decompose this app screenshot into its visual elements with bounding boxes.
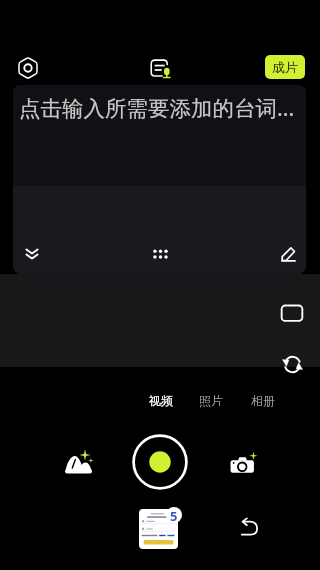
button[interactable]: Edit [273, 239, 303, 269]
button[interactable]: Settings [13, 53, 43, 83]
button[interactable]: Effects [58, 442, 98, 482]
button[interactable]: Shutter [130, 432, 190, 492]
button[interactable]: Camera [223, 446, 263, 486]
button[interactable]: Switch camera [277, 349, 307, 379]
staticText: 点击输入所需要添加的台词... [19, 93, 295, 122]
button[interactable]: More options [145, 239, 175, 269]
staticText: 5 [170, 507, 178, 523]
button[interactable]: Last clip [139, 507, 182, 550]
button[interactable]: 相册 [246, 391, 279, 409]
staticText: 视频 [149, 393, 173, 408]
staticText: 相册 [251, 393, 275, 408]
staticText: 成片 [272, 59, 298, 75]
button[interactable]: 视频 [144, 391, 177, 409]
button[interactable]: Aspect ratio [277, 298, 307, 328]
button[interactable]: 成片 [265, 55, 305, 79]
button[interactable]: Undo [232, 510, 266, 544]
button[interactable]: 照片 [194, 391, 227, 409]
button[interactable]: Collapse [17, 239, 47, 269]
button[interactable]: Script [145, 53, 175, 83]
staticText: 照片 [199, 393, 223, 408]
button[interactable]: 点击输入所需要添加的台词... [13, 85, 306, 186]
